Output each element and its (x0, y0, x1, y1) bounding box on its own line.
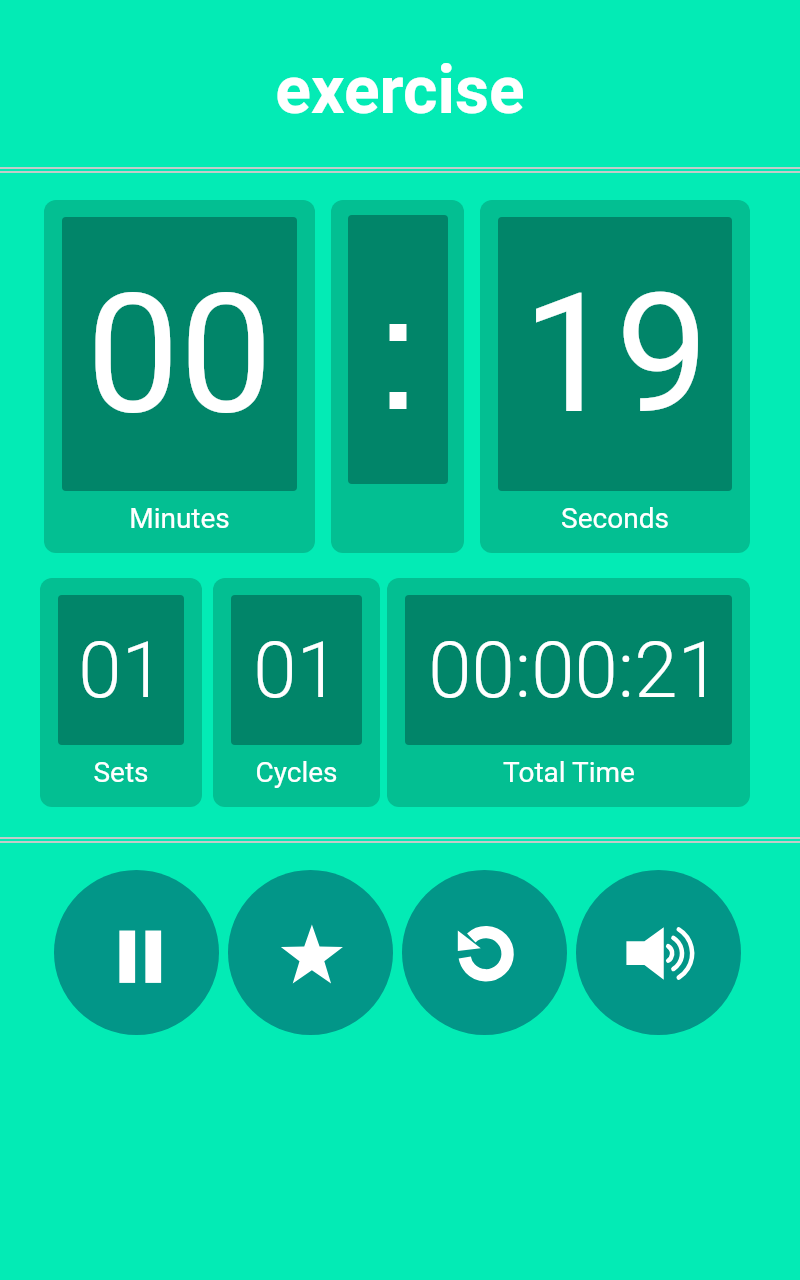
staticText: Cycles (255, 756, 338, 789)
button[interactable]: Favorite (228, 870, 393, 1035)
button[interactable]: 19 (480, 200, 750, 553)
button[interactable]: 01 (40, 578, 202, 807)
staticText: Seconds (561, 502, 669, 535)
button[interactable]: Pause (54, 870, 219, 1035)
button[interactable]: Sound (576, 870, 741, 1035)
staticText: 00 (86, 257, 273, 452)
button[interactable]: 01 (213, 578, 380, 807)
staticText: Sets (93, 756, 149, 789)
staticText: 01 (78, 625, 165, 716)
staticText: 01 (253, 625, 340, 716)
staticText: 19 (522, 257, 709, 452)
button[interactable]: 00 (44, 200, 315, 553)
staticText: exercise (275, 52, 525, 129)
staticText: Total Time (503, 756, 635, 789)
button[interactable]: Restart (402, 870, 567, 1035)
staticText: Minutes (129, 502, 230, 535)
staticText: 00:00:21 (428, 625, 721, 716)
button[interactable]: 00:00:21 (387, 578, 750, 807)
